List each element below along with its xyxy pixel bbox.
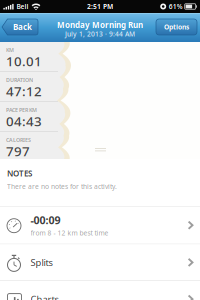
staticText: 61% — [169, 2, 183, 11]
staticText: 47:12 — [6, 82, 42, 100]
staticText: NOTES — [7, 168, 32, 179]
staticText: from 8 - 12 km best time — [30, 229, 108, 237]
staticText: Bell — [16, 2, 28, 11]
staticText: DURATION — [6, 76, 33, 84]
staticText: There are no notes for this activity. — [7, 182, 117, 191]
staticText: -00:09 — [30, 213, 60, 227]
staticText: KM — [6, 46, 14, 54]
button[interactable]: Splits — [0, 244, 200, 280]
staticText: 797 — [6, 142, 30, 160]
button[interactable]: -00:09 — [0, 207, 200, 244]
button[interactable]: Charts — [0, 281, 200, 300]
staticText: 04:43 — [6, 112, 42, 130]
staticText: PACE PER KM — [6, 106, 37, 114]
staticText: 10.01 — [6, 52, 42, 70]
staticText: Back — [13, 22, 32, 32]
staticText: Charts — [30, 293, 58, 300]
button[interactable]: Back — [2, 19, 38, 35]
staticText: CALORIES — [6, 136, 31, 144]
staticText: Splits — [30, 256, 52, 269]
staticText: Monday Morning Run — [57, 20, 143, 30]
button[interactable]: Options — [156, 19, 197, 35]
staticText: July 1, 2013 · 9:44 AM — [65, 30, 135, 38]
staticText: Options — [164, 23, 189, 31]
staticText: 2:51 PM — [87, 2, 113, 11]
